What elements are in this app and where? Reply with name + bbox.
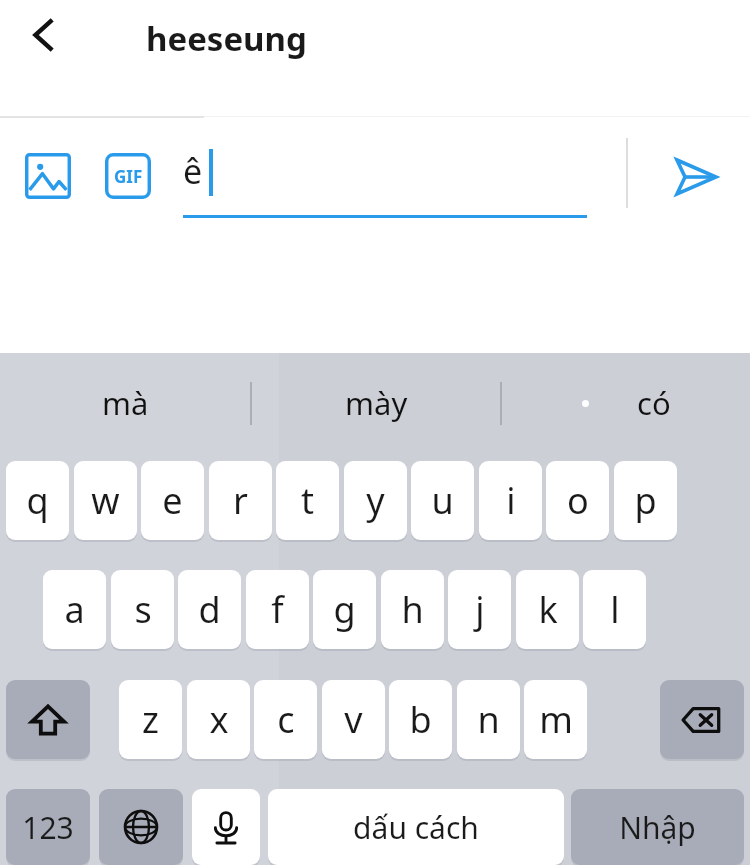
- staticText: u: [431, 476, 454, 525]
- staticText: t: [301, 476, 314, 525]
- button[interactable]: Back: [14, 4, 76, 66]
- button[interactable]: v: [322, 680, 385, 759]
- staticText: GIF: [114, 165, 143, 188]
- staticText: z: [142, 695, 159, 744]
- staticText: heeseung: [146, 16, 307, 61]
- button[interactable]: b: [389, 680, 452, 759]
- button[interactable]: mày: [252, 353, 501, 453]
- staticText: n: [477, 695, 500, 744]
- staticText: m: [539, 695, 573, 744]
- button[interactable]: w: [74, 461, 137, 540]
- staticText: ê: [183, 148, 203, 194]
- staticText: dấu cách: [353, 807, 479, 848]
- button[interactable]: i: [479, 461, 542, 540]
- button[interactable]: h: [381, 570, 444, 649]
- staticText: l: [610, 585, 620, 634]
- staticText: c: [277, 695, 295, 744]
- staticText: j: [475, 585, 485, 634]
- button[interactable]: q: [6, 461, 69, 540]
- button[interactable]: Add photo: [16, 144, 80, 208]
- button[interactable]: t: [276, 461, 339, 540]
- button[interactable]: Send: [660, 142, 730, 212]
- button[interactable]: e: [141, 461, 204, 540]
- button[interactable]: d: [178, 570, 241, 649]
- staticText: i: [506, 476, 516, 525]
- staticText: 123: [22, 807, 74, 848]
- button[interactable]: Voice input: [192, 789, 260, 865]
- button[interactable]: z: [119, 680, 182, 759]
- button[interactable]: l: [583, 570, 646, 649]
- button[interactable]: r: [209, 461, 272, 540]
- staticText: h: [401, 585, 424, 634]
- button[interactable]: 123: [6, 789, 90, 865]
- button[interactable]: u: [411, 461, 474, 540]
- button[interactable]: y: [344, 461, 407, 540]
- staticText: d: [198, 585, 221, 634]
- button[interactable]: o: [546, 461, 609, 540]
- staticText: mày: [345, 382, 408, 424]
- button[interactable]: Add GIF: [96, 144, 160, 208]
- staticText: k: [538, 585, 558, 634]
- button[interactable]: dấu cách: [268, 789, 564, 865]
- button[interactable]: c: [254, 680, 317, 759]
- staticText: x: [209, 695, 229, 744]
- button[interactable]: Shift: [6, 680, 90, 759]
- staticText: mà: [102, 382, 149, 424]
- staticText: b: [409, 695, 432, 744]
- staticText: Nhập: [619, 807, 696, 848]
- button[interactable]: k: [516, 570, 579, 649]
- staticText: g: [333, 585, 356, 634]
- staticText: v: [344, 695, 363, 744]
- button[interactable]: p: [614, 461, 677, 540]
- staticText: e: [162, 476, 183, 525]
- button[interactable]: Change language: [99, 789, 183, 865]
- staticText: a: [64, 585, 85, 634]
- staticText: w: [91, 476, 120, 525]
- button[interactable]: x: [187, 680, 250, 759]
- button[interactable]: Backspace: [660, 680, 744, 759]
- staticText: q: [26, 476, 49, 525]
- button[interactable]: m: [524, 680, 587, 759]
- staticText: y: [366, 476, 385, 525]
- staticText: r: [233, 476, 248, 525]
- button[interactable]: n: [457, 680, 520, 759]
- button[interactable]: có: [502, 353, 750, 453]
- staticText: s: [134, 585, 152, 634]
- staticText: o: [567, 476, 589, 525]
- staticText: p: [634, 476, 657, 525]
- button[interactable]: j: [448, 570, 511, 649]
- button[interactable]: f: [246, 570, 309, 649]
- button[interactable]: Nhập: [571, 789, 744, 865]
- staticText: có: [637, 382, 671, 424]
- button[interactable]: a: [43, 570, 106, 649]
- staticText: f: [271, 585, 284, 634]
- button[interactable]: g: [313, 570, 376, 649]
- button[interactable]: mà: [0, 353, 251, 453]
- button[interactable]: s: [111, 570, 174, 649]
